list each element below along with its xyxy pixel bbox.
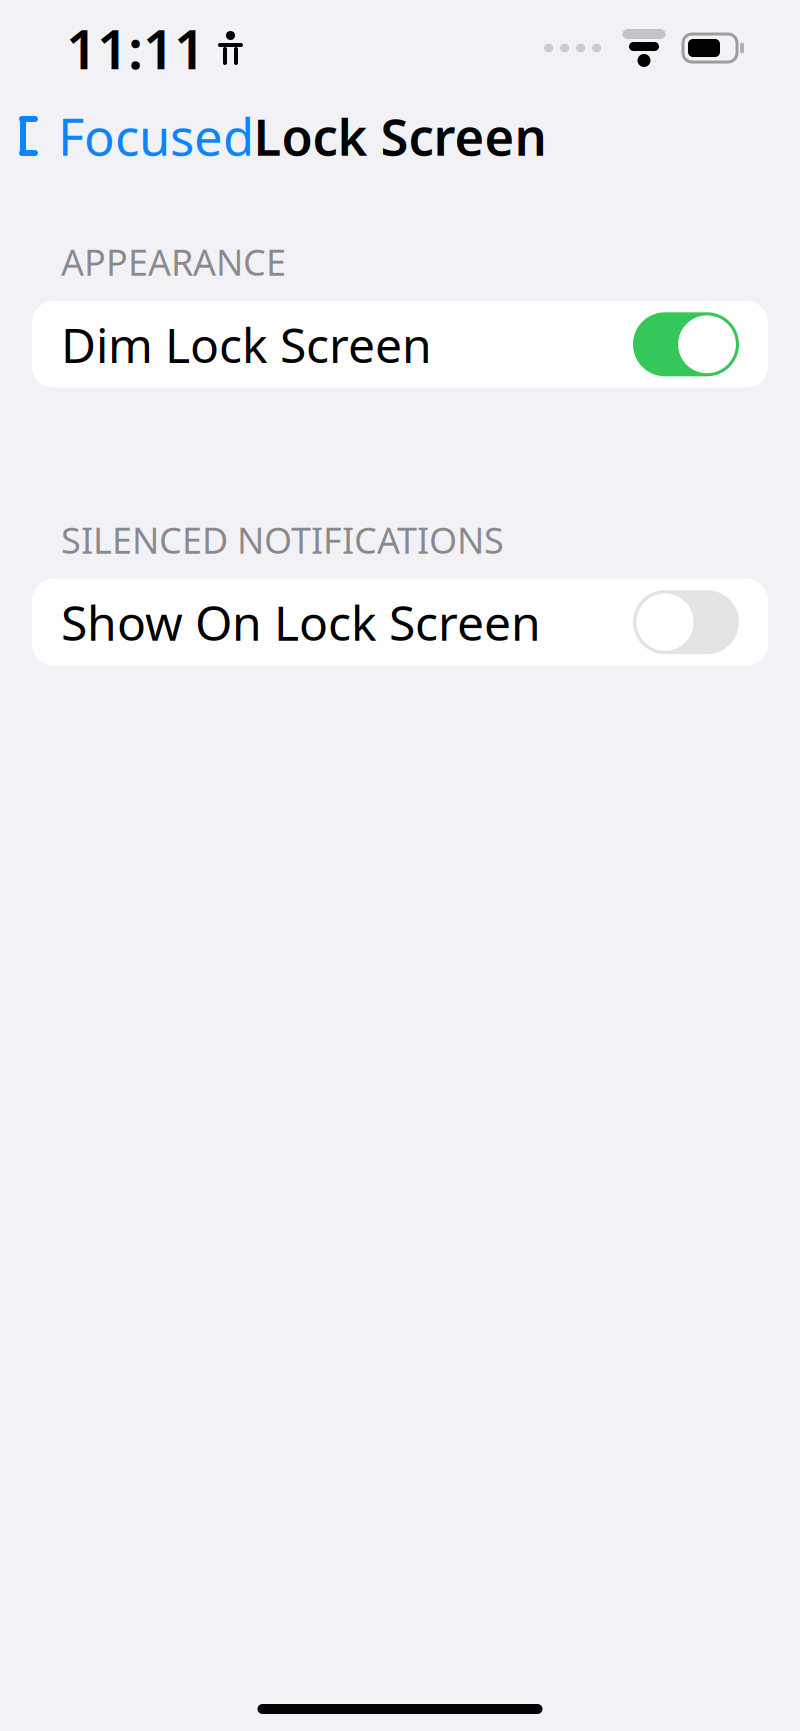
staticText: APPEARANCE: [61, 238, 286, 286]
button[interactable]: Focused: [0, 96, 270, 176]
button[interactable]: Dim Lock Screen: [32, 301, 768, 388]
staticText: Dim Lock Screen: [61, 312, 432, 376]
button[interactable]: Show On Lock Screen: [32, 579, 768, 666]
staticText: 11:11: [66, 12, 205, 84]
staticText: SILENCED NOTIFICATIONS: [61, 516, 504, 564]
staticText: Show On Lock Screen: [61, 590, 541, 654]
staticText: Focused: [58, 102, 254, 170]
staticText: Lock Screen: [253, 102, 546, 170]
